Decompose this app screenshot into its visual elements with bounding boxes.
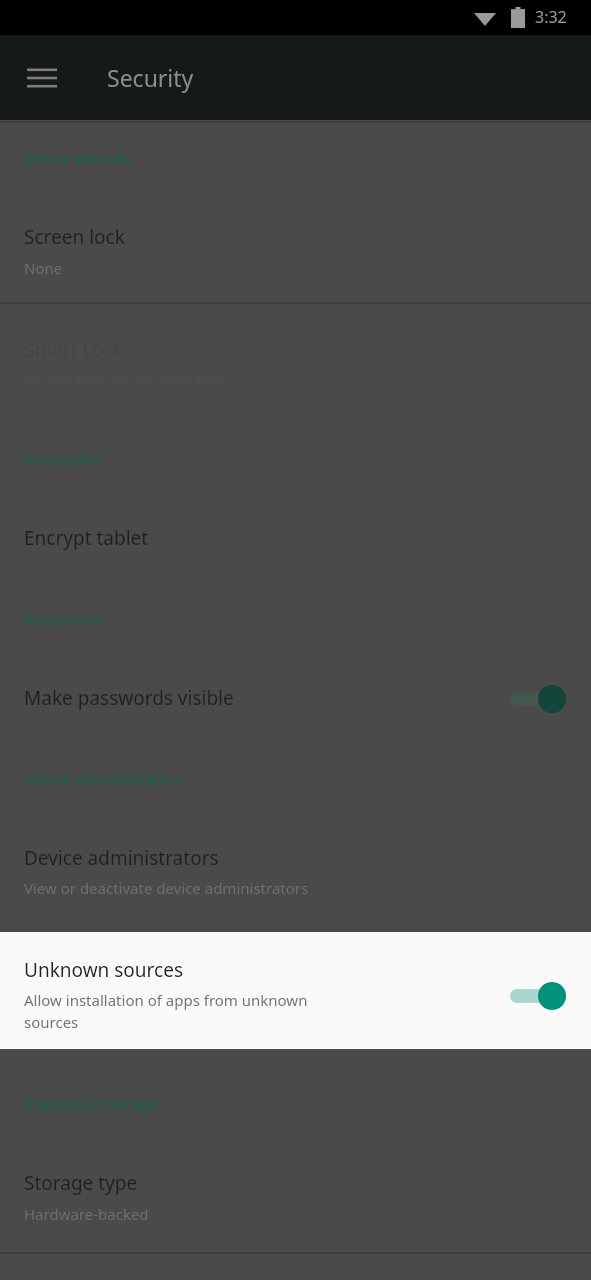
staticText: Device administrators xyxy=(24,845,219,871)
staticText: 3:32 xyxy=(535,6,567,28)
staticText: Make passwords visible xyxy=(24,685,234,711)
button[interactable] xyxy=(0,665,591,735)
button[interactable] xyxy=(0,826,591,926)
button[interactable]: Unknown sources xyxy=(0,932,591,1049)
staticText: Security xyxy=(107,62,194,93)
staticText: Device security xyxy=(24,148,132,168)
button[interactable] xyxy=(0,1152,591,1252)
button[interactable]: Open navigation menu xyxy=(18,54,66,102)
staticText: Unknown sources xyxy=(24,957,183,983)
button[interactable] xyxy=(0,505,591,575)
staticText: Device administration xyxy=(24,769,181,789)
staticText: Encryption xyxy=(24,449,102,469)
staticText: Encrypt tablet xyxy=(24,525,149,551)
button[interactable]: Unknown sources toggle xyxy=(506,972,574,1020)
staticText: Hardware-backed xyxy=(24,1204,149,1224)
staticText: Credential storage xyxy=(24,1094,157,1114)
staticText: Storage type xyxy=(24,1170,138,1196)
button[interactable] xyxy=(0,205,591,303)
staticText: View or deactivate device administrators xyxy=(24,878,309,898)
staticText: Screen lock xyxy=(24,224,125,250)
staticText: Allow installation of apps from unknown … xyxy=(24,990,444,1033)
staticText: Passwords xyxy=(24,609,101,629)
button[interactable]: Make passwords visible toggle xyxy=(506,675,574,723)
staticText: None xyxy=(24,258,63,278)
